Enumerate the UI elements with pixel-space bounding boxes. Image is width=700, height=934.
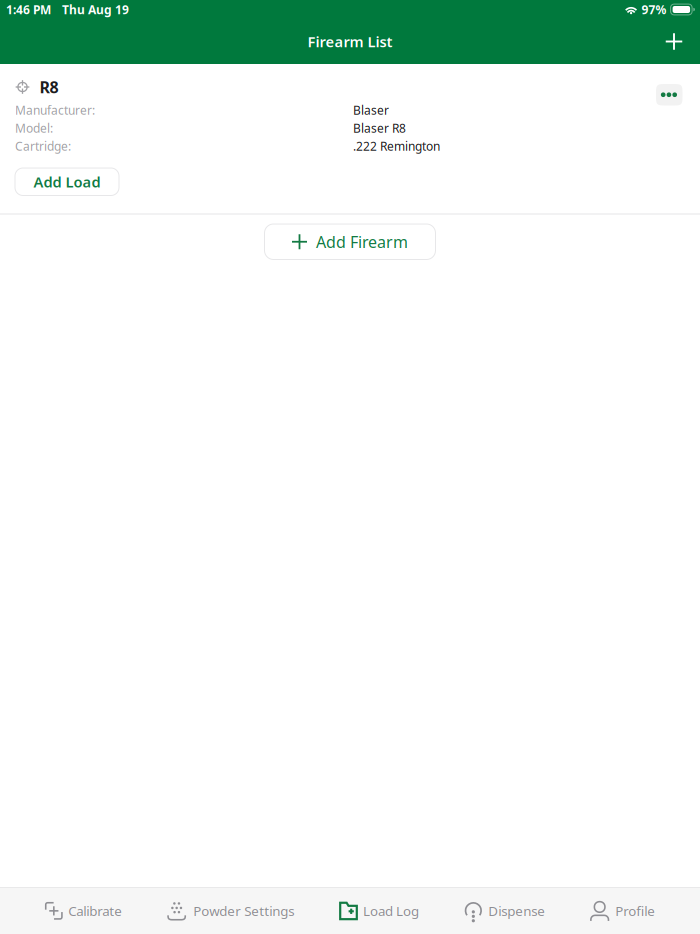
staticText: Load Log — [363, 902, 419, 920]
button[interactable]: Add Firearm — [264, 224, 435, 259]
button[interactable]: Powder Settings — [167, 888, 294, 934]
button[interactable]: Add Load — [15, 168, 119, 195]
staticText: Model: — [15, 120, 53, 136]
staticText: 97% — [642, 1, 667, 17]
button[interactable]: Profile — [590, 888, 655, 934]
staticText: Profile — [615, 902, 655, 920]
staticText: Firearm List — [307, 32, 392, 51]
button[interactable]: Add firearm — [653, 20, 695, 62]
button[interactable]: Dispense — [464, 888, 545, 934]
staticText: Manufacturer: — [15, 102, 95, 118]
staticText: Thu Aug 19 — [62, 1, 129, 17]
staticText: .222 Remington — [353, 138, 440, 154]
staticText: Calibrate — [68, 902, 122, 920]
button[interactable]: Load Log — [339, 888, 419, 934]
staticText: R8 — [39, 76, 58, 98]
staticText: Blaser — [353, 102, 389, 118]
staticText: Add Load — [33, 172, 100, 191]
staticText: Cartridge: — [15, 138, 71, 154]
staticText: Dispense — [488, 902, 545, 920]
staticText: Add Firearm — [316, 231, 408, 252]
staticText: Blaser R8 — [353, 120, 406, 136]
staticText: 1:46 PM — [6, 1, 51, 17]
button[interactable]: More options — [656, 84, 682, 105]
staticText: Powder Settings — [193, 902, 294, 920]
button[interactable]: Calibrate — [45, 888, 122, 934]
